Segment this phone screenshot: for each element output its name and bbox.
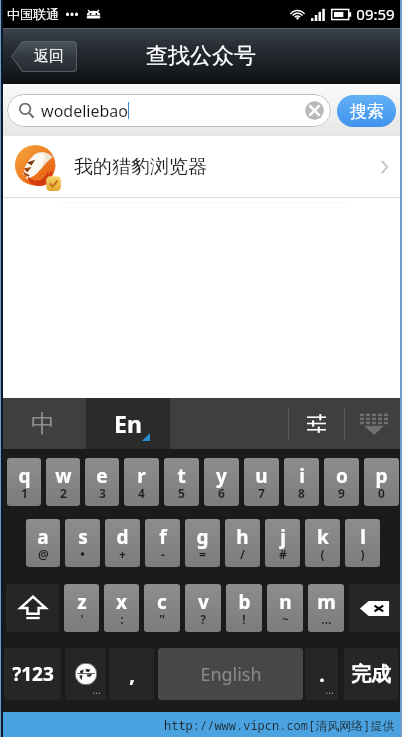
staticText: 6 [218, 485, 225, 501]
button[interactable]: x [104, 584, 139, 632]
staticText: 返回 [34, 47, 64, 66]
button[interactable]: u [244, 458, 279, 506]
staticText: j [280, 524, 286, 550]
button[interactable]: Hide keyboard [345, 398, 402, 449]
staticText: 搜索 [350, 101, 384, 122]
staticText: k [317, 524, 329, 550]
button[interactable]: n [267, 584, 303, 632]
staticText: n [279, 589, 292, 615]
staticText: 7 [258, 485, 265, 501]
staticText: … [321, 611, 332, 627]
button[interactable]: Shift [6, 584, 59, 632]
staticText: 3 [99, 485, 106, 501]
staticText: @ [38, 546, 49, 562]
staticText: d [116, 524, 129, 550]
staticText: ?123 [12, 661, 54, 687]
button[interactable]: c [144, 584, 180, 632]
staticText: f [159, 524, 167, 550]
staticText: a [37, 524, 49, 550]
button[interactable]: Backspace [349, 584, 400, 632]
button[interactable]: z [64, 584, 99, 632]
button[interactable]: f [145, 519, 180, 567]
button[interactable]: l [345, 519, 380, 567]
staticText: i [299, 463, 305, 489]
button[interactable]: q [7, 458, 41, 506]
staticText: ' [80, 611, 84, 627]
staticText: p [375, 463, 388, 489]
staticText: w [55, 463, 72, 489]
staticText: • [80, 546, 85, 562]
staticText: u [255, 463, 268, 489]
staticText: g [196, 524, 209, 550]
staticText: 2 [60, 485, 67, 501]
button[interactable]: 我的猎豹浏览器 [0, 136, 402, 197]
staticText: . [319, 661, 325, 688]
staticText: " [159, 611, 165, 627]
staticText: 9 [338, 485, 345, 501]
button[interactable]: English [158, 648, 303, 700]
button[interactable]: v [185, 584, 221, 632]
staticText: l [360, 524, 366, 550]
staticText: http://www.vipcn.com[清风网络]提供 [164, 717, 395, 733]
staticText: q [18, 463, 31, 489]
button[interactable]: 搜索 [337, 95, 396, 127]
button[interactable]: w [46, 458, 80, 506]
button[interactable]: d [105, 519, 140, 567]
button[interactable]: Input settings [289, 398, 344, 449]
button[interactable]: p [364, 458, 399, 506]
button[interactable]: ?123 [4, 648, 61, 700]
button[interactable]: r [124, 458, 159, 506]
staticText: 09:59 [356, 4, 395, 24]
staticText: … [325, 682, 334, 697]
button[interactable]: o [324, 458, 359, 506]
staticText: ( [320, 546, 325, 562]
staticText: 中 [31, 409, 55, 439]
button[interactable]: wodeliebao [7, 94, 331, 127]
button[interactable]: j [265, 519, 300, 567]
staticText: wodeliebao [41, 100, 128, 122]
staticText: + [119, 546, 126, 562]
button[interactable]: 中 [0, 398, 86, 449]
button[interactable]: i [284, 458, 319, 506]
staticText: 中国联通 [7, 6, 59, 22]
staticText: ! [242, 611, 246, 627]
button[interactable]: En [86, 398, 170, 449]
button[interactable]: m [308, 584, 344, 632]
staticText: 5 [178, 485, 185, 501]
staticText: v [198, 589, 209, 615]
staticText: ~ [282, 611, 289, 627]
staticText: x [116, 589, 127, 615]
staticText: # [279, 546, 287, 562]
staticText: o [336, 463, 348, 489]
staticText: ••• [65, 6, 79, 22]
button[interactable]: , [109, 648, 154, 700]
staticText: 8 [298, 485, 305, 501]
staticText: m [317, 589, 336, 615]
button[interactable]: s [65, 519, 100, 567]
button[interactable]: 完成 [344, 648, 398, 700]
staticText: 1 [21, 485, 28, 501]
button[interactable]: b [226, 584, 262, 632]
button[interactable]: a [26, 519, 60, 567]
button[interactable]: 返回 [12, 42, 76, 71]
staticText: … [92, 682, 101, 697]
button[interactable]: t [164, 458, 199, 506]
button[interactable]: . [305, 648, 338, 700]
staticText: y [216, 463, 227, 489]
staticText: ) [360, 546, 365, 562]
button[interactable]: Clear text [305, 101, 324, 120]
button[interactable]: Change keyboard language [65, 648, 106, 700]
staticText: = [199, 546, 206, 562]
button[interactable]: y [204, 458, 239, 506]
staticText: ? [200, 611, 206, 627]
staticText: En [114, 408, 142, 439]
button[interactable]: k [305, 519, 340, 567]
button[interactable]: e [85, 458, 119, 506]
staticText: 查找公众号 [146, 42, 256, 70]
button[interactable]: g [185, 519, 220, 567]
staticText: r [137, 463, 146, 489]
staticText: , [129, 661, 135, 688]
button[interactable]: h [225, 519, 260, 567]
staticText: / [240, 546, 245, 562]
staticText: 我的猎豹浏览器 [74, 155, 207, 179]
